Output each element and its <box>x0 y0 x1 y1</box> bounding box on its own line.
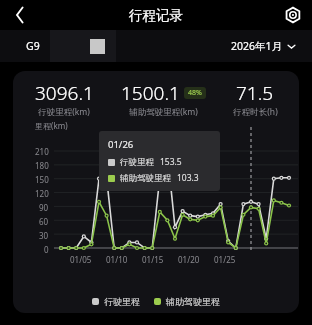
staticText: 01/10 <box>106 254 128 265</box>
staticText: 180 <box>35 160 49 171</box>
button[interactable]: 2026年1月 <box>231 39 296 53</box>
button[interactable]: Back <box>0 0 36 30</box>
staticText: 3096.1 <box>35 80 94 106</box>
staticText: 01/20 <box>178 254 200 265</box>
button[interactable]: G9 <box>26 39 40 53</box>
button[interactable]: 1500.1 <box>110 80 216 118</box>
staticText: 30 <box>39 230 49 241</box>
staticText: 0 <box>44 244 49 255</box>
staticText: 辅助驾驶里程 <box>120 173 171 184</box>
staticText: 里程(km) <box>35 120 68 131</box>
staticText: 行驶里程 <box>120 157 154 168</box>
staticText: 01/26 <box>108 138 134 151</box>
button[interactable] <box>50 30 116 62</box>
staticText: 48% <box>188 88 202 98</box>
button[interactable]: Settings <box>278 0 312 30</box>
staticText: 1500.1 <box>121 80 180 106</box>
staticText: 行驶里程 <box>104 296 140 307</box>
staticText: 2026年1月 <box>231 39 283 53</box>
button[interactable]: 行驶里程 <box>92 296 140 307</box>
staticText: 辅助驾驶里程(km) <box>129 106 198 118</box>
button[interactable]: 3096.1 <box>18 80 110 118</box>
staticText: 01/15 <box>142 254 164 265</box>
staticText: 行驶里程(km) <box>38 106 90 118</box>
button[interactable]: 辅助驾驶里程 <box>154 296 220 307</box>
staticText: 90 <box>39 202 49 213</box>
staticText: 120 <box>35 188 49 199</box>
staticText: 60 <box>39 216 49 227</box>
staticText: 210 <box>35 146 49 157</box>
staticText: 辅助驾驶里程 <box>166 296 220 307</box>
staticText: 103.3 <box>177 172 199 184</box>
staticText: 01/05 <box>70 254 92 265</box>
button[interactable]: 71.5 <box>216 80 294 118</box>
staticText: 71.5 <box>236 80 274 106</box>
staticText: 01/25 <box>214 254 236 265</box>
staticText: 150 <box>35 174 49 185</box>
staticText: 行程记录 <box>129 7 183 24</box>
staticText: 153.5 <box>160 156 182 168</box>
staticText: 行程时长(h) <box>233 106 278 118</box>
